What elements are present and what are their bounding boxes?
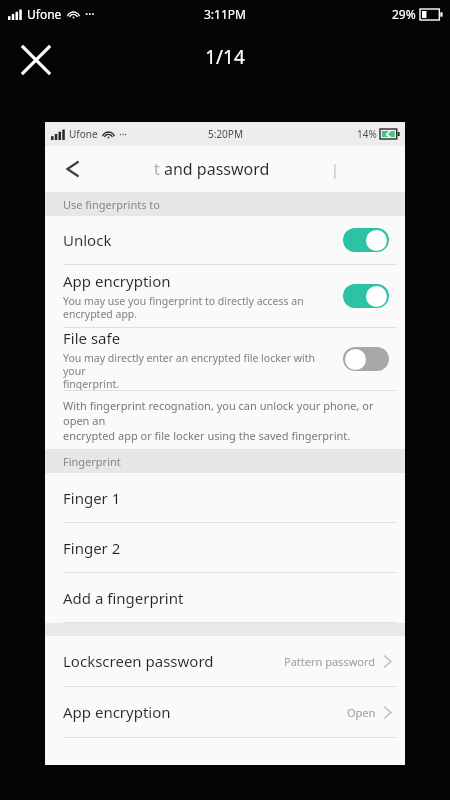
staticText: Finger 1 — [63, 488, 121, 508]
staticText: Use fingerprints to — [63, 197, 160, 212]
button[interactable]: Close — [16, 40, 56, 80]
staticText: App encryption — [63, 271, 171, 291]
staticText: Ufone — [69, 127, 98, 141]
staticText: Lockscreen password — [63, 651, 214, 671]
staticText: Add a fingerprint — [63, 588, 184, 608]
button[interactable]: App encryption — [45, 687, 405, 737]
staticText: Pattern password — [284, 654, 376, 669]
staticText: App encryption — [63, 702, 171, 722]
staticText: t — [154, 158, 164, 180]
staticText: 14% — [357, 127, 377, 141]
button[interactable]: Unlock — [45, 216, 405, 264]
staticText: Fingerprint — [63, 454, 121, 469]
button[interactable]: Toggle off — [343, 347, 389, 371]
staticText: Unlock — [63, 230, 112, 250]
staticText: File safe — [63, 328, 121, 348]
staticText: 1/14 — [0, 44, 450, 70]
staticText: 29% — [392, 6, 416, 22]
staticText: 3:11PM — [204, 6, 246, 22]
button[interactable]: File safe — [45, 328, 405, 390]
staticText: and password — [164, 158, 270, 180]
staticText: ··· — [85, 6, 95, 22]
staticText: | — [331, 160, 339, 179]
button[interactable]: Toggle on — [343, 284, 389, 308]
button[interactable]: App encryption — [45, 265, 405, 327]
button[interactable]: Lockscreen password — [45, 636, 405, 686]
button[interactable]: Back — [55, 151, 91, 187]
staticText: Ufone — [27, 6, 62, 22]
button[interactable]: Finger 2 — [45, 523, 405, 572]
staticText: With fingerprint recognation, you can un… — [63, 398, 393, 443]
staticText: ··· — [119, 127, 128, 141]
staticText: 5:20PM — [208, 127, 243, 141]
staticText: Open — [347, 705, 376, 720]
staticText: Finger 2 — [63, 538, 121, 558]
button[interactable]: Finger 1 — [45, 473, 405, 522]
button[interactable]: Add a fingerprint — [45, 573, 405, 622]
button[interactable]: Toggle on — [343, 228, 389, 252]
staticText: You may directly enter an encrypted file… — [63, 351, 335, 390]
staticText: You may use you fingerprint to directly … — [63, 294, 304, 321]
